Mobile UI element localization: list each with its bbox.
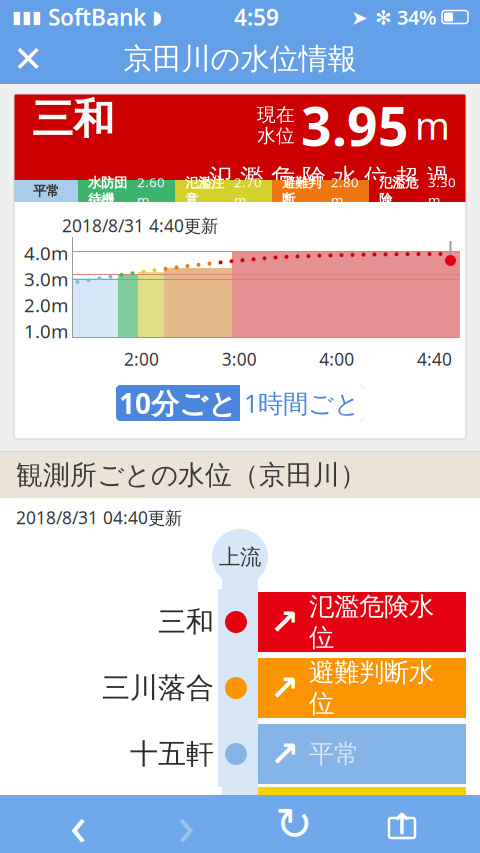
staticText: 水位 <box>257 124 295 147</box>
staticText: 4.0m <box>24 241 68 265</box>
staticText: 4:59 <box>234 2 279 32</box>
staticText: ✕ <box>13 39 43 79</box>
staticText: 上流 <box>219 544 261 570</box>
staticText: ↗ <box>270 734 299 774</box>
staticText: SoftBank <box>42 2 152 32</box>
staticText: 三川落合 <box>102 671 214 705</box>
staticText: 2.60m <box>137 173 165 209</box>
staticText: 4:40 <box>417 347 452 370</box>
staticText: ◗ <box>152 6 162 28</box>
staticText: ↗ <box>270 602 299 642</box>
staticText: 2:00 <box>124 347 159 370</box>
staticText: 3:00 <box>222 347 257 370</box>
staticText: 1時間ごと <box>244 386 360 420</box>
staticText: 3.0m <box>24 267 68 291</box>
button[interactable]: 十五軒 <box>0 721 480 787</box>
button[interactable]: 再読み込み <box>264 795 324 853</box>
staticText: ▮▮▮ <box>12 7 42 27</box>
button[interactable]: 閉じる <box>0 34 56 84</box>
staticText: 観測所ごとの水位（京田川） <box>16 459 367 491</box>
staticText: 3.30m <box>428 173 456 209</box>
staticText: 氾濫注意 <box>185 175 224 207</box>
staticText: ↑ <box>389 807 414 841</box>
staticText: 2.70m <box>234 173 262 209</box>
staticText: ↗ <box>270 668 299 708</box>
button[interactable]: 共有 <box>372 795 432 853</box>
button[interactable]: 戻る <box>48 795 108 853</box>
staticText: ‹ <box>69 787 86 853</box>
staticText: 三和 <box>158 605 214 639</box>
staticText: 2018/8/31 4:40更新 <box>62 214 218 237</box>
staticText: 氾濫危険 <box>379 175 418 207</box>
staticText: 2018/8/31 04:40更新 <box>16 506 182 529</box>
staticText: 水防団待機 <box>88 175 127 207</box>
staticText: 避難判断水位 <box>309 657 434 719</box>
staticText: 2.80m <box>331 173 359 209</box>
button[interactable]: 三和 <box>0 589 480 655</box>
staticText: 現在 <box>257 103 295 126</box>
staticText: 3.95 <box>301 90 409 161</box>
staticText: 氾濫危険水位 <box>309 591 434 653</box>
staticText: 2.0m <box>24 293 68 317</box>
staticText: 避難判断 <box>282 175 321 207</box>
staticText: 1.0m <box>24 319 68 343</box>
staticText: › <box>177 787 194 853</box>
staticText: 三和 <box>32 94 114 145</box>
button[interactable]: 1時間ごと <box>240 385 364 421</box>
button[interactable]: 10分ごと <box>116 385 240 421</box>
staticText: 氾 濫 危 険 水 位 超 過 <box>209 163 450 192</box>
button[interactable]: 進む <box>156 795 216 853</box>
staticText: 平常 <box>33 183 59 199</box>
button[interactable]: 三川落合 <box>0 655 480 721</box>
staticText: 平常 <box>309 738 359 770</box>
staticText: 京田川の水位情報 <box>123 41 356 77</box>
staticText: m <box>415 100 450 150</box>
staticText: 十五軒 <box>130 737 214 771</box>
staticText: ↻ <box>275 798 313 850</box>
staticText: 4:00 <box>319 347 354 370</box>
staticText: 10分ごと <box>119 384 237 422</box>
staticText: ➤ ✻ 34% <box>351 4 437 30</box>
